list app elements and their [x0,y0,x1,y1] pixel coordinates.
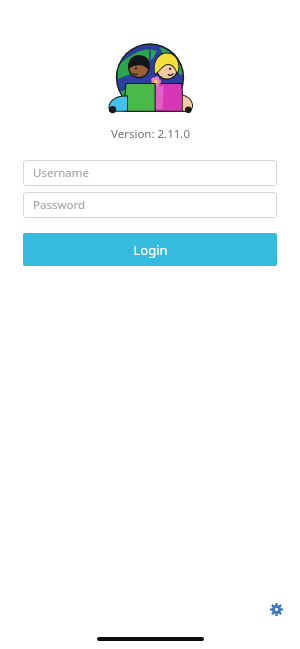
button[interactable]: Settings [263,596,289,622]
button[interactable]: Login [23,233,277,266]
staticText: Login [133,241,168,259]
other: App logo [111,40,189,112]
staticText: Version: 2.11.0 [111,126,190,142]
button[interactable]: Username [23,160,277,186]
staticText: Username [33,165,89,181]
staticText: Password [33,197,86,213]
button[interactable]: Password [23,192,277,218]
